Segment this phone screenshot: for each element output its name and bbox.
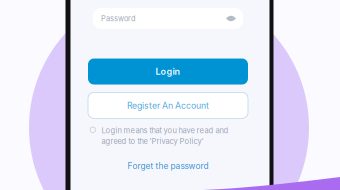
staticText: Password — [101, 14, 136, 23]
button[interactable]: Login — [88, 58, 248, 84]
button[interactable]: Forget the password — [88, 160, 248, 172]
staticText: Forget the password — [127, 161, 208, 171]
staticText: agreed to the 'Privacy Policy' — [101, 137, 203, 146]
staticText: Login — [155, 66, 180, 77]
button[interactable]: Password — [93, 8, 243, 29]
button[interactable]: Register An Account — [88, 92, 248, 118]
staticText: Register An Account — [127, 100, 209, 111]
staticText: Login means that you have read and — [101, 126, 228, 135]
